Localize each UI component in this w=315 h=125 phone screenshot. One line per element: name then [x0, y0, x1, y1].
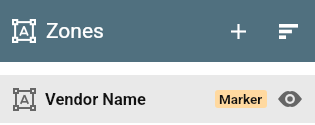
- button[interactable]: Toggle visibility: [277, 86, 303, 112]
- button[interactable]: Add zone: [222, 15, 254, 47]
- staticText: Marker: [219, 91, 263, 107]
- staticText: Vendor Name: [45, 90, 147, 109]
- button[interactable]: Sort: [272, 15, 304, 47]
- staticText: Zones: [46, 19, 104, 44]
- button[interactable]: Zone: [12, 19, 36, 43]
- button[interactable]: Vendor Name: [0, 75, 315, 123]
- button[interactable]: Marker: [215, 90, 267, 108]
